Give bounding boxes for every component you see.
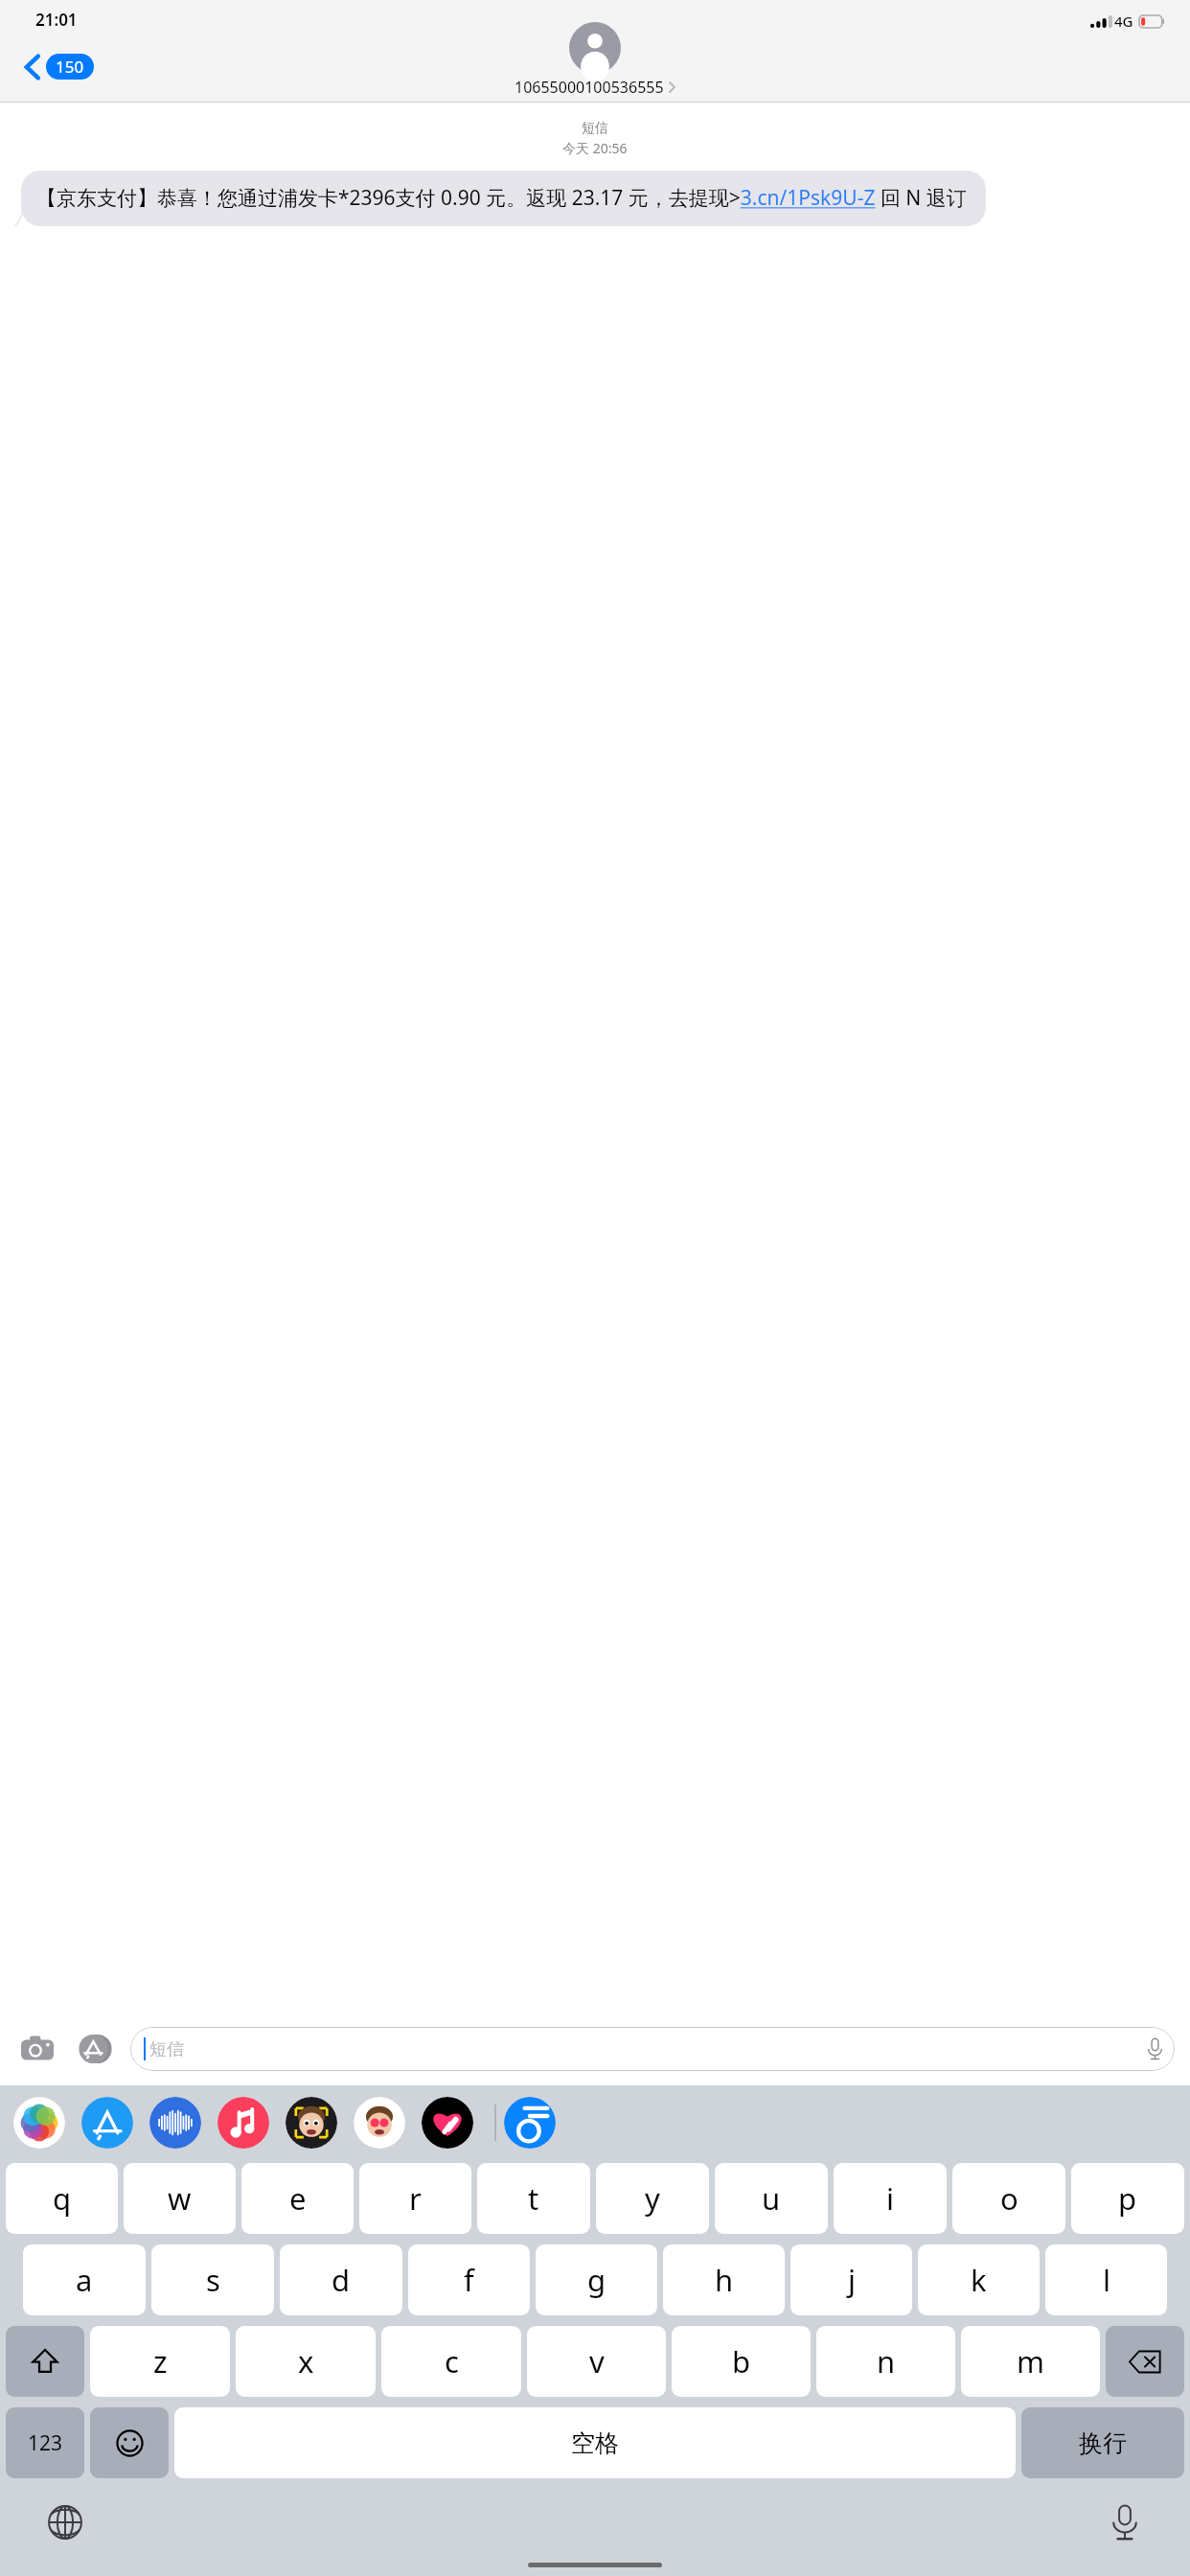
staticText: x	[298, 2341, 314, 2381]
staticText: g	[587, 2260, 606, 2300]
button[interactable]: v	[527, 2326, 666, 2397]
staticText: u	[762, 2178, 781, 2219]
button[interactable]: Memoji	[286, 2097, 337, 2149]
button[interactable]: r	[359, 2163, 471, 2234]
button[interactable]: p	[1071, 2163, 1184, 2234]
staticText: e	[289, 2178, 307, 2219]
button[interactable]: u	[715, 2163, 828, 2234]
button[interactable]: Dictation	[1098, 2495, 1152, 2549]
button[interactable]: 123	[6, 2407, 84, 2478]
button[interactable]: Audio message	[149, 2097, 201, 2149]
button[interactable]: Change keyboard	[38, 2495, 92, 2549]
staticText: q	[53, 2178, 72, 2219]
staticText: z	[153, 2341, 168, 2381]
staticText: j	[848, 2260, 856, 2300]
button[interactable]: l	[1045, 2244, 1167, 2315]
button[interactable]: Back to messages, 150 unread	[19, 50, 100, 83]
button[interactable]: App Store	[73, 2027, 117, 2071]
button[interactable]: 短信	[130, 2027, 1175, 2071]
staticText: l	[1103, 2260, 1110, 2300]
button[interactable]: c	[381, 2326, 521, 2397]
staticText: 10655000100536555	[515, 77, 664, 98]
staticText: 今天 20:56	[562, 139, 628, 157]
button[interactable]: w	[124, 2163, 236, 2234]
button[interactable]: q	[6, 2163, 118, 2234]
button[interactable]: i	[834, 2163, 947, 2234]
staticText: t	[528, 2178, 539, 2219]
button[interactable]: j	[790, 2244, 912, 2315]
staticText: s	[206, 2260, 220, 2300]
staticText: b	[732, 2341, 751, 2381]
staticText: v	[589, 2341, 605, 2381]
button[interactable]: App Store	[81, 2097, 133, 2149]
staticText: 空格	[571, 2428, 619, 2458]
button[interactable]: o	[952, 2163, 1065, 2234]
staticText: 短信	[582, 120, 608, 137]
staticText: 150	[56, 56, 84, 78]
button[interactable]: Photos	[13, 2097, 65, 2149]
staticText: n	[877, 2341, 896, 2381]
button[interactable]: Backspace	[1106, 2326, 1184, 2397]
button[interactable]: b	[672, 2326, 811, 2397]
button[interactable]: k	[918, 2244, 1040, 2315]
button[interactable]: f	[408, 2244, 530, 2315]
staticText: 4G	[1114, 11, 1133, 31]
button[interactable]: g	[536, 2244, 657, 2315]
button[interactable]: t	[477, 2163, 590, 2234]
staticText: i	[886, 2178, 894, 2219]
button[interactable]: More apps	[504, 2097, 556, 2149]
button[interactable]: z	[90, 2326, 230, 2397]
staticText: r	[409, 2178, 422, 2219]
button[interactable]: 空格	[174, 2407, 1016, 2478]
button[interactable]: n	[816, 2326, 955, 2397]
button[interactable]: d	[280, 2244, 402, 2315]
button[interactable]: Emoji keyboard	[90, 2407, 169, 2478]
staticText: m	[1017, 2341, 1044, 2381]
staticText: k	[971, 2260, 987, 2300]
staticText: 21:01	[35, 9, 78, 31]
button[interactable]: y	[596, 2163, 709, 2234]
button[interactable]: Camera	[15, 2027, 59, 2071]
button[interactable]: s	[151, 2244, 274, 2315]
staticText: d	[332, 2260, 351, 2300]
button[interactable]: 【京东支付】恭喜！您通过浦发卡*2396支付 0.90 元。返现 23.17 元…	[13, 171, 986, 226]
staticText: f	[464, 2260, 474, 2300]
staticText: y	[645, 2178, 660, 2219]
staticText: o	[1000, 2178, 1018, 2219]
button[interactable]: x	[236, 2326, 376, 2397]
button[interactable]: Music	[217, 2097, 269, 2149]
button[interactable]: h	[663, 2244, 785, 2315]
staticText: 换行	[1079, 2428, 1127, 2458]
staticText: w	[168, 2178, 192, 2219]
staticText: c	[445, 2341, 459, 2381]
button[interactable]: a	[23, 2244, 146, 2315]
button[interactable]: Memoji stickers	[354, 2097, 405, 2149]
other: Dictate	[1147, 2037, 1163, 2060]
staticText: 123	[28, 2429, 63, 2457]
button[interactable]: 换行	[1021, 2407, 1184, 2478]
staticText: a	[76, 2260, 93, 2300]
button[interactable]: e	[241, 2163, 354, 2234]
button[interactable]: 10655000100536555	[515, 22, 675, 98]
staticText: p	[1118, 2178, 1137, 2219]
button[interactable]: Digital Touch	[422, 2097, 473, 2149]
staticText: h	[715, 2260, 734, 2300]
staticText: 短信	[149, 2038, 184, 2060]
button[interactable]: m	[961, 2326, 1100, 2397]
button[interactable]: Shift	[6, 2326, 84, 2397]
